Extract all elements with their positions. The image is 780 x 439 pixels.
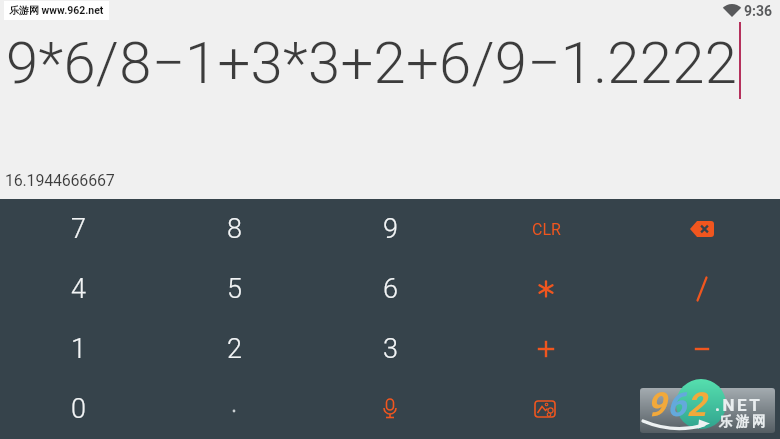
- button[interactable]: 2: [156, 319, 312, 379]
- staticText: 6: [383, 273, 398, 305]
- staticText: 5: [227, 273, 242, 305]
- button[interactable]: [468, 379, 624, 439]
- staticText: .NET: [715, 395, 763, 415]
- button[interactable]: [468, 319, 624, 379]
- button[interactable]: CLR: [468, 199, 624, 259]
- button[interactable]: [624, 199, 780, 259]
- staticText: 乐游网 www.962.net: [9, 4, 104, 17]
- staticText: 9: [383, 213, 398, 245]
- staticText: 4: [71, 273, 86, 305]
- staticText: 2: [227, 333, 242, 365]
- staticText: 9*6/8−1+3*3+2+6/9−1.2222: [6, 29, 738, 97]
- button[interactable]: 1: [0, 319, 156, 379]
- button[interactable]: [624, 379, 780, 439]
- staticText: 962: [647, 385, 707, 424]
- button[interactable]: 8: [156, 199, 312, 259]
- staticText: CLR: [532, 220, 561, 239]
- button[interactable]: 0: [0, 379, 156, 439]
- button[interactable]: [156, 379, 312, 439]
- button[interactable]: 9: [312, 199, 468, 259]
- staticText: 0: [71, 393, 86, 425]
- button[interactable]: 3: [312, 319, 468, 379]
- button[interactable]: [312, 379, 468, 439]
- staticText: 3: [383, 333, 398, 365]
- button[interactable]: 6: [312, 259, 468, 319]
- staticText: 乐游网: [719, 413, 769, 430]
- staticText: 16.1944666667: [5, 171, 115, 190]
- button[interactable]: [468, 259, 624, 319]
- staticText: 7: [71, 213, 86, 245]
- button[interactable]: 4: [0, 259, 156, 319]
- staticText: 8: [227, 213, 242, 245]
- staticText: 1: [71, 333, 86, 365]
- button[interactable]: 5: [156, 259, 312, 319]
- button[interactable]: 7: [0, 199, 156, 259]
- staticText: 9:36: [744, 3, 773, 19]
- button[interactable]: [624, 259, 780, 319]
- button[interactable]: [624, 319, 780, 379]
